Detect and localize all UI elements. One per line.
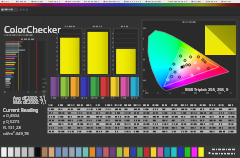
staticText: x 0,4504 (3, 113, 20, 119)
staticText: RGB Triplet: 255, 255, 0 (185, 87, 229, 92)
staticText: Max dE2000: 7,1 (13, 99, 47, 105)
staticText: cd/m² 449,78 (3, 131, 29, 137)
staticText: ColorChecker (4, 23, 61, 35)
staticText: Avg dE2000: 3,1 (13, 95, 46, 101)
staticText: y 0,5273 (3, 119, 20, 125)
button[interactable]: ColorChecker calibration report (0, 0, 240, 158)
staticText: Current Reading (3, 107, 39, 113)
staticText: fL 131,28 (3, 125, 21, 131)
